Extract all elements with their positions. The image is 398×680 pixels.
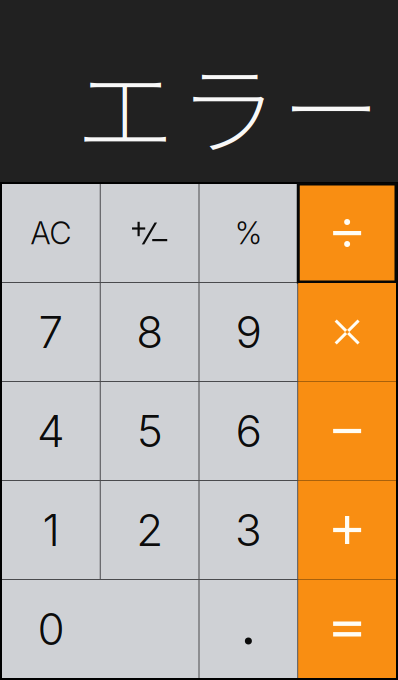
button[interactable]: Plus — [298, 481, 396, 579]
staticText: 6 — [235, 404, 261, 458]
button[interactable]: Decimal point — [199, 580, 297, 678]
button[interactable]: % — [199, 184, 297, 282]
staticText: AC — [30, 214, 71, 251]
button[interactable]: 6 — [199, 382, 297, 480]
button[interactable]: 5 — [101, 382, 199, 480]
button[interactable]: Minus — [298, 382, 396, 480]
staticText: 1 — [42, 503, 59, 557]
button[interactable]: 0 — [2, 580, 198, 678]
button[interactable]: 9 — [199, 283, 297, 381]
staticText: 0 — [37, 602, 64, 656]
staticText: エラー — [75, 31, 381, 176]
button[interactable]: Divide — [298, 184, 396, 282]
staticText: 2 — [136, 503, 163, 557]
button[interactable]: AC — [2, 184, 100, 282]
button[interactable]: 4 — [2, 382, 100, 480]
staticText: 3 — [235, 503, 262, 557]
button[interactable]: 1 — [2, 481, 100, 579]
button[interactable]: Change sign — [101, 184, 199, 282]
staticText: 8 — [136, 305, 163, 359]
button[interactable]: 7 — [2, 283, 100, 381]
staticText: 4 — [37, 404, 65, 458]
button[interactable]: 3 — [199, 481, 297, 579]
staticText: 5 — [137, 404, 163, 458]
staticText: % — [235, 214, 262, 251]
button[interactable]: Equals — [298, 580, 396, 678]
button[interactable]: 2 — [101, 481, 199, 579]
staticText: 7 — [38, 305, 63, 359]
staticText: 9 — [235, 305, 261, 359]
button[interactable]: 8 — [101, 283, 199, 381]
button[interactable]: Multiply — [298, 283, 396, 381]
